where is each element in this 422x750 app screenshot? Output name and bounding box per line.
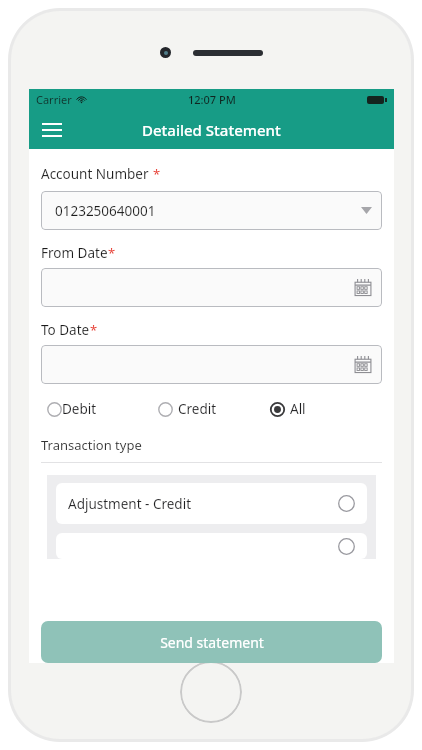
staticText: 12:07 PM xyxy=(188,92,236,107)
staticText: Account Number xyxy=(41,165,149,183)
staticText: Detailed Statement xyxy=(142,120,281,140)
button[interactable] xyxy=(56,533,367,559)
staticText: Carrier xyxy=(36,92,72,107)
button[interactable]: Open navigation menu xyxy=(37,115,67,145)
button[interactable]: 0123250640001 xyxy=(41,191,382,230)
staticText: Transaction type xyxy=(41,436,142,454)
staticText: Debit xyxy=(62,400,97,418)
staticText: Send statement xyxy=(160,633,264,652)
staticText: 0123250640001 xyxy=(55,202,156,220)
button[interactable]: Credit xyxy=(158,400,270,418)
staticText: Adjustment - Credit xyxy=(68,495,192,513)
button[interactable]: Debit xyxy=(47,400,158,418)
button[interactable]: All xyxy=(270,400,382,418)
staticText: From Date xyxy=(41,244,108,262)
staticText: * xyxy=(90,321,98,339)
button[interactable]: Pick date xyxy=(41,345,382,384)
staticText: Credit xyxy=(178,400,217,418)
button[interactable]: Pick date xyxy=(41,268,382,307)
staticText: To Date xyxy=(41,321,90,339)
button[interactable]: Send statement xyxy=(41,621,382,663)
staticText: All xyxy=(290,400,306,418)
other: Pick date xyxy=(353,278,372,297)
button[interactable]: Adjustment - Credit xyxy=(56,483,367,524)
staticText: * xyxy=(153,165,161,183)
other: Pick date xyxy=(353,355,372,374)
staticText: * xyxy=(108,244,116,262)
